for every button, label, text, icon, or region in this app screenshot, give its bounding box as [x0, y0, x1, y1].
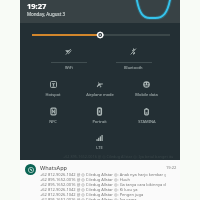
button[interactable]: WiFi — [36, 45, 101, 69]
staticText: LTE — [96, 145, 103, 150]
staticText: +62 895-1652-0016 @ ◎ Ciledug Allstar ◎:… — [63, 154, 174, 159]
staticText: Airplane mode — [86, 92, 114, 97]
staticText: +62 895-1652-0016 @ ◎ Ciledug Allstar ◎:… — [40, 177, 131, 182]
button[interactable]: Bluetooth — [101, 45, 166, 69]
button[interactable]: Airplane mode — [76, 78, 123, 98]
staticText: Portrait — [92, 119, 107, 124]
staticText: Bluetooth — [124, 65, 143, 69]
button[interactable]: LTE — [76, 131, 123, 151]
staticText: 19:27 — [27, 1, 47, 11]
button[interactable]: STAMINA — [123, 105, 170, 125]
button[interactable]: Mobile data — [123, 78, 170, 98]
staticText: Mobile data — [135, 92, 158, 97]
button[interactable]: NFC — [30, 105, 76, 125]
staticText: NFC — [49, 119, 57, 124]
staticText: +62 812-9026-1042 @ ◎ Ciledug Allstar ◎:… — [40, 172, 166, 177]
staticText: Hotspot — [45, 92, 61, 97]
staticText: STAMINA — [138, 119, 156, 124]
button[interactable]: WhatsApp — [20, 160, 180, 200]
button[interactable]: Hotspot — [30, 78, 76, 98]
staticText: Monday, August 3 — [27, 11, 66, 17]
staticText: +62 812-9026-1042 @ ◎ Ciledug Allstar ◎:… — [40, 187, 138, 192]
staticText: +62 812-9026-1042 @ ◎ Ciledug Allstar ◎:… — [40, 192, 144, 197]
staticText: 19:22 — [166, 165, 177, 170]
button[interactable]: Portrait — [76, 105, 123, 125]
button[interactable]: Brightness — [20, 28, 180, 42]
staticText: WhatsApp — [40, 164, 67, 171]
staticText: WiFi — [65, 65, 73, 69]
staticText: +62 895-1652-0016 @ ◎ Ciledug Allstar ◎:… — [40, 197, 137, 200]
staticText: +62 895-1652-0016 @ ◎ Ciledug Allstar ◎:… — [40, 182, 166, 187]
